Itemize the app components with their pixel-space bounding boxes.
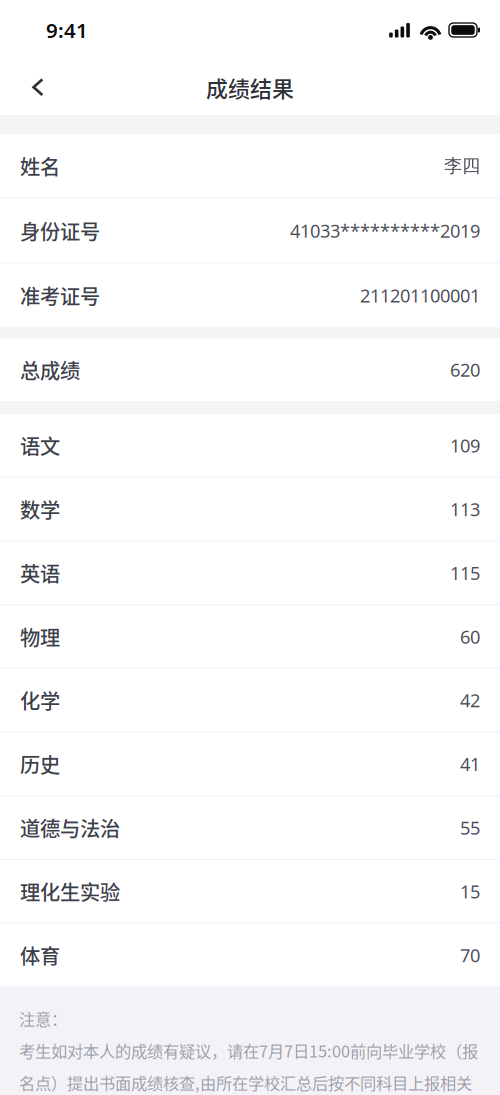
staticText: 41 — [460, 751, 480, 776]
staticText: 113 — [450, 497, 480, 522]
staticText: 英语 — [20, 558, 60, 587]
staticText: 70 — [460, 943, 480, 967]
staticText: 15 — [460, 879, 480, 904]
staticText: 41033**********2019 — [290, 218, 480, 243]
staticText: 姓名 — [20, 151, 60, 180]
button[interactable]: 数学 — [0, 478, 500, 540]
staticText: 历史 — [20, 749, 60, 779]
staticText: 语文 — [20, 431, 60, 460]
button[interactable]: 英语 — [0, 541, 500, 604]
button[interactable]: 返回 — [16, 62, 60, 112]
staticText: 注意： — [19, 1007, 67, 1030]
staticText: 化学 — [20, 686, 60, 715]
staticText: 成绩结果 — [206, 72, 294, 103]
staticText: 物理 — [20, 622, 60, 651]
staticText: 109 — [450, 433, 480, 458]
staticText: 115 — [450, 560, 480, 585]
button[interactable]: 姓名 — [0, 134, 500, 198]
button[interactable]: 历史 — [0, 733, 500, 795]
staticText: 620 — [450, 357, 480, 382]
staticText: 9:41 — [46, 16, 88, 44]
button[interactable]: 道德与法治 — [0, 796, 500, 859]
staticText: 李四 — [444, 154, 480, 177]
staticText: 准考证号 — [20, 281, 100, 310]
button[interactable]: 化学 — [0, 669, 500, 732]
button[interactable]: 理化生实验 — [0, 860, 500, 923]
button[interactable]: 身份证号 — [0, 199, 500, 263]
staticText: 211201100001 — [360, 283, 480, 308]
staticText: 42 — [460, 688, 480, 713]
staticText: 55 — [460, 815, 480, 840]
staticText: 理化生实验 — [20, 877, 120, 906]
button[interactable]: 语文 — [0, 414, 500, 477]
button[interactable]: 总成绩 — [0, 338, 500, 401]
button[interactable]: 体育 — [0, 924, 500, 986]
staticText: 数学 — [20, 494, 60, 524]
staticText: 体育 — [20, 940, 60, 970]
staticText: 道德与法治 — [20, 813, 120, 842]
staticText: 考生如对本人的成绩有疑议，请在7月7日15:00前向毕业学校（报 — [19, 1039, 478, 1062]
staticText: 总成绩 — [20, 355, 80, 384]
button[interactable]: 准考证号 — [0, 264, 500, 327]
staticText: 身份证号 — [20, 216, 100, 245]
button[interactable]: 物理 — [0, 605, 500, 668]
staticText: 60 — [460, 624, 480, 649]
staticText: 名点）提出书面成绩核查,由所在学校汇总后按不同科目上报相关 — [19, 1071, 472, 1094]
